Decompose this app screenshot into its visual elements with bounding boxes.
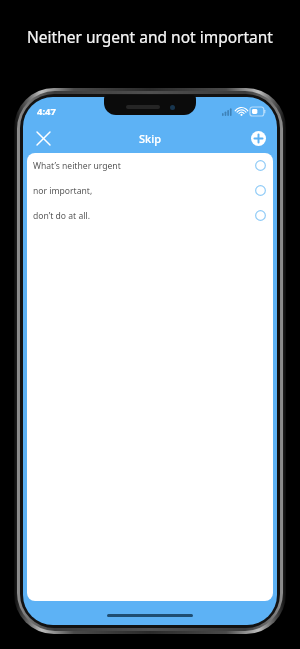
button[interactable]: Skip xyxy=(129,127,171,150)
staticText: don’t do at all. xyxy=(33,210,255,222)
button[interactable]: don’t do at all. xyxy=(27,203,273,228)
staticText: nor important, xyxy=(33,185,255,197)
button[interactable]: nor important, xyxy=(27,178,273,203)
staticText: Neither urgent and not important xyxy=(22,26,278,47)
button[interactable]: Add task xyxy=(245,125,271,151)
button[interactable]: What’s neither urgent xyxy=(27,153,273,178)
button[interactable]: Close xyxy=(29,124,57,152)
staticText: 4:47 xyxy=(37,105,56,118)
staticText: What’s neither urgent xyxy=(33,160,255,172)
staticText: Skip xyxy=(139,131,161,146)
